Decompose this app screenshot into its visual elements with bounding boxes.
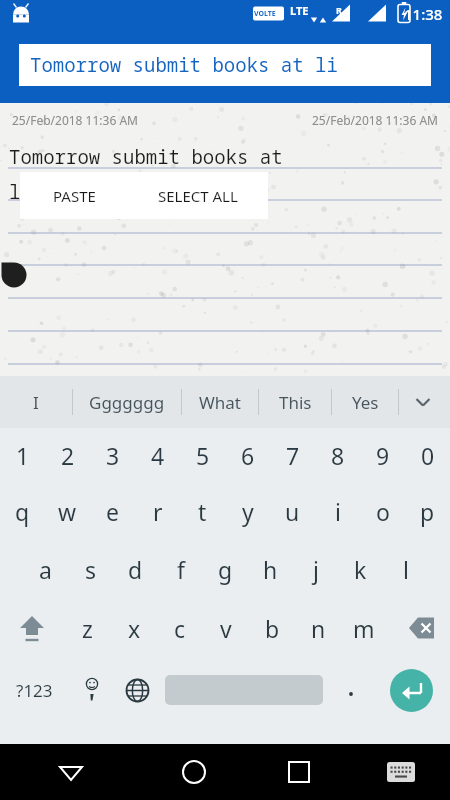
button[interactable]: SELECT ALL xyxy=(128,172,268,219)
button[interactable]: ?123 xyxy=(0,658,69,722)
button[interactable]: f xyxy=(158,540,203,598)
button[interactable]: Change keyboard language xyxy=(115,658,160,722)
staticText: f xyxy=(177,554,185,585)
button[interactable]: w xyxy=(45,482,90,540)
staticText: l xyxy=(403,554,409,585)
button[interactable]: j xyxy=(293,540,338,598)
staticText: ?123 xyxy=(16,679,53,702)
staticText: 1 xyxy=(16,440,30,471)
button[interactable]: Hide keyboard xyxy=(0,744,141,800)
button[interactable]: s xyxy=(68,540,113,598)
button[interactable]: Tomorrow submit books at li xyxy=(19,44,431,86)
button[interactable]: 7 xyxy=(270,428,315,482)
button[interactable]: x xyxy=(111,598,157,658)
button[interactable]: What xyxy=(182,376,258,428)
staticText: h xyxy=(263,554,278,585)
button[interactable]: e xyxy=(90,482,135,540)
staticText: 0 xyxy=(421,440,435,471)
button[interactable]: a xyxy=(22,540,68,598)
button[interactable]: k xyxy=(338,540,383,598)
button[interactable] xyxy=(328,658,373,722)
button[interactable]: 6 xyxy=(225,428,270,482)
button[interactable]: I xyxy=(0,376,72,428)
staticText: 25/Feb/2018 11:36 AM xyxy=(12,112,138,128)
button[interactable]: 2 xyxy=(45,428,90,482)
button[interactable]: y xyxy=(225,482,270,540)
button[interactable]: 3 xyxy=(90,428,135,482)
button[interactable]: Backspace xyxy=(387,598,450,658)
button[interactable]: m xyxy=(341,598,387,658)
staticText: b xyxy=(265,613,280,644)
staticText: PASTE xyxy=(53,186,96,206)
staticText: n xyxy=(311,613,326,644)
staticText: t xyxy=(198,496,207,527)
staticText: What xyxy=(199,391,241,414)
button[interactable]: Recent apps xyxy=(246,744,351,800)
button[interactable]: Shift xyxy=(0,598,64,658)
button[interactable]: g xyxy=(203,540,248,598)
button[interactable]: More suggestions xyxy=(399,376,447,428)
button[interactable]: PASTE xyxy=(20,172,128,219)
button[interactable]: 8 xyxy=(315,428,360,482)
staticText: o xyxy=(376,496,390,527)
button[interactable]: 4 xyxy=(135,428,180,482)
staticText: x xyxy=(128,613,141,644)
staticText: s xyxy=(85,554,97,585)
button[interactable]: Switch keyboard xyxy=(351,744,450,800)
button[interactable]: z xyxy=(64,598,111,658)
staticText: Tomorrow submit books at li xyxy=(30,52,338,78)
button[interactable]: d xyxy=(113,540,158,598)
button[interactable]: r xyxy=(135,482,180,540)
staticText: VOLTE xyxy=(254,9,276,19)
button[interactable]: p xyxy=(405,482,450,540)
staticText: k xyxy=(354,554,367,585)
button[interactable]: c xyxy=(157,598,203,658)
staticText: j xyxy=(313,554,319,585)
button[interactable]: Yes xyxy=(332,376,398,428)
staticText: y xyxy=(242,496,254,527)
button[interactable]: q xyxy=(0,482,45,540)
button[interactable]: i xyxy=(315,482,360,540)
staticText: i xyxy=(335,496,341,527)
staticText: 4 xyxy=(151,440,165,471)
staticText: Yes xyxy=(352,391,379,414)
staticText: l xyxy=(9,179,21,205)
staticText: a xyxy=(39,554,52,585)
staticText: z xyxy=(82,613,93,644)
button[interactable]: Ggggggg xyxy=(73,376,181,428)
staticText: 7 xyxy=(286,440,300,471)
staticText: w xyxy=(58,496,77,527)
staticText: SELECT ALL xyxy=(158,186,238,206)
button[interactable]: h xyxy=(248,540,293,598)
staticText: p xyxy=(420,496,435,527)
button[interactable]: Enter xyxy=(390,669,433,712)
button[interactable]: u xyxy=(270,482,315,540)
staticText: 2 xyxy=(61,440,75,471)
staticText: d xyxy=(128,554,143,585)
staticText: LTE xyxy=(290,3,309,18)
staticText: 9 xyxy=(376,440,390,471)
staticText: This xyxy=(279,391,312,414)
button[interactable]: This xyxy=(259,376,331,428)
button[interactable]: 0 xyxy=(405,428,450,482)
button[interactable]: v xyxy=(203,598,249,658)
button[interactable]: Emoji and comma xyxy=(69,658,115,722)
staticText: 6 xyxy=(241,440,255,471)
button[interactable]: t xyxy=(180,482,225,540)
staticText: 8 xyxy=(331,440,345,471)
button[interactable]: o xyxy=(360,482,405,540)
button[interactable]: Home xyxy=(141,744,246,800)
button[interactable]: l xyxy=(383,540,428,598)
button[interactable]: 9 xyxy=(360,428,405,482)
staticText: r xyxy=(153,496,163,527)
staticText: e xyxy=(106,496,119,527)
button[interactable]: 1 xyxy=(0,428,45,482)
staticText: Tomorrow submit books at xyxy=(9,144,283,170)
staticText: q xyxy=(15,496,30,527)
staticText: m xyxy=(353,613,375,644)
button[interactable]: b xyxy=(249,598,295,658)
button[interactable]: n xyxy=(295,598,341,658)
staticText: I xyxy=(33,391,39,414)
button[interactable]: 5 xyxy=(180,428,225,482)
